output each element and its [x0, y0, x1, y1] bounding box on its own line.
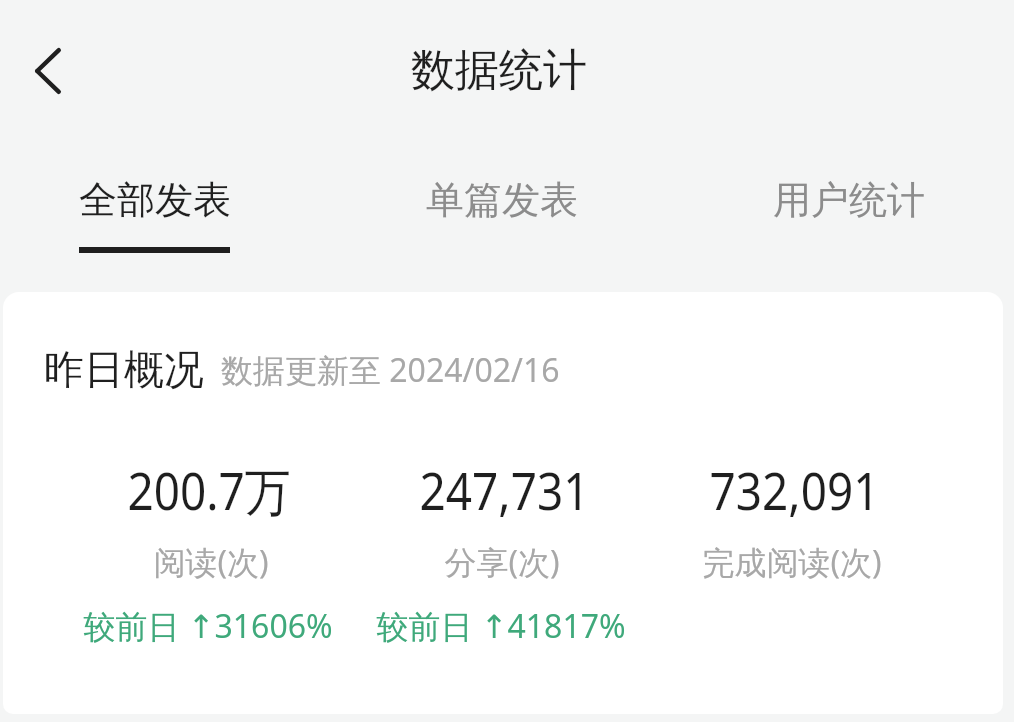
staticText: 阅读(次) — [153, 540, 269, 584]
staticText: 单篇发表 — [426, 176, 578, 224]
button[interactable]: 全部发表 — [35, 157, 275, 267]
button[interactable]: Back — [12, 36, 84, 106]
staticText: 732,091 — [709, 455, 880, 524]
staticText: 昨日概况 — [44, 344, 204, 394]
staticText: 较前日 ↑41817% — [376, 604, 626, 648]
staticText: 数据更新至 2024/02/16 — [221, 348, 560, 392]
staticText: 用户统计 — [773, 176, 925, 224]
staticText: 200.7万 — [127, 455, 291, 525]
staticText: 全部发表 — [79, 176, 231, 224]
staticText: 数据统计 — [411, 43, 587, 98]
staticText: 较前日 ↑31606% — [83, 604, 333, 648]
staticText: 247,731 — [419, 455, 590, 524]
staticText: 完成阅读(次) — [702, 540, 882, 584]
staticText: 分享(次) — [444, 540, 560, 584]
button[interactable]: 用户统计 — [729, 157, 969, 267]
button[interactable]: 单篇发表 — [382, 157, 622, 267]
